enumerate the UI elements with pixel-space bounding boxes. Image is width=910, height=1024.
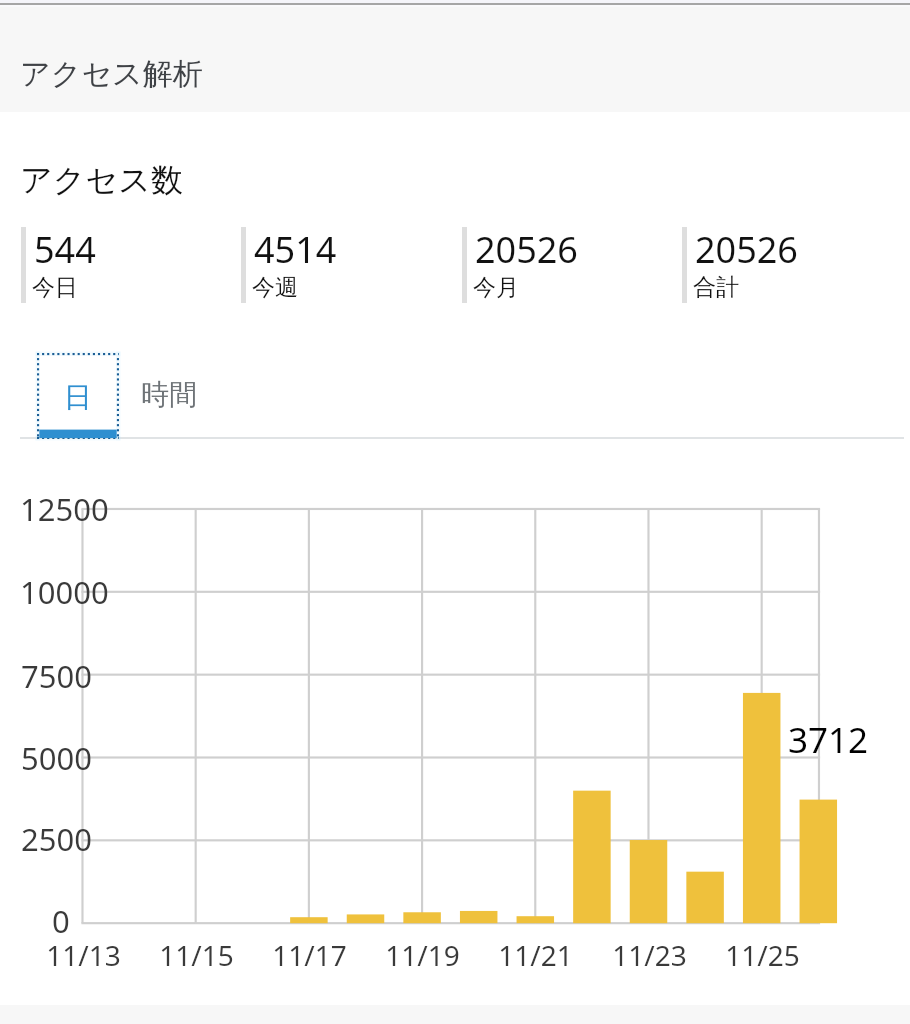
- staticText: 12500: [20, 488, 109, 530]
- staticText: 11/15: [159, 936, 234, 974]
- staticText: 11/19: [385, 936, 460, 974]
- staticText: 20526: [695, 225, 798, 274]
- staticText: 5000: [21, 737, 92, 779]
- button[interactable]: 20526: [682, 227, 882, 303]
- staticText: 4514: [254, 225, 337, 274]
- staticText: 544: [34, 225, 96, 274]
- staticText: 時間: [141, 377, 197, 412]
- button[interactable]: 20526: [462, 227, 662, 303]
- staticText: 11/25: [725, 936, 800, 974]
- staticText: 11/21: [498, 936, 573, 974]
- staticText: アクセス数: [20, 160, 183, 200]
- staticText: アクセス解析: [20, 55, 203, 93]
- staticText: 0: [52, 900, 70, 942]
- staticText: 11/23: [612, 936, 687, 974]
- staticText: 今月: [473, 273, 519, 302]
- staticText: 今週: [252, 273, 298, 302]
- staticText: 10000: [20, 571, 109, 613]
- button[interactable]: 時間: [131, 352, 207, 438]
- staticText: 11/17: [272, 936, 347, 974]
- button[interactable]: 日: [37, 353, 119, 439]
- staticText: 20526: [475, 225, 578, 274]
- staticText: 2500: [21, 818, 92, 860]
- button[interactable]: 544: [21, 227, 221, 303]
- staticText: 11/13: [46, 936, 121, 974]
- staticText: 7500: [21, 655, 92, 697]
- other: Daily access bar chart: [0, 505, 910, 965]
- button[interactable]: 4514: [241, 227, 441, 303]
- staticText: 今日: [32, 273, 78, 302]
- staticText: 日: [64, 380, 92, 415]
- staticText: 3712: [788, 716, 869, 764]
- staticText: 合計: [693, 273, 739, 302]
